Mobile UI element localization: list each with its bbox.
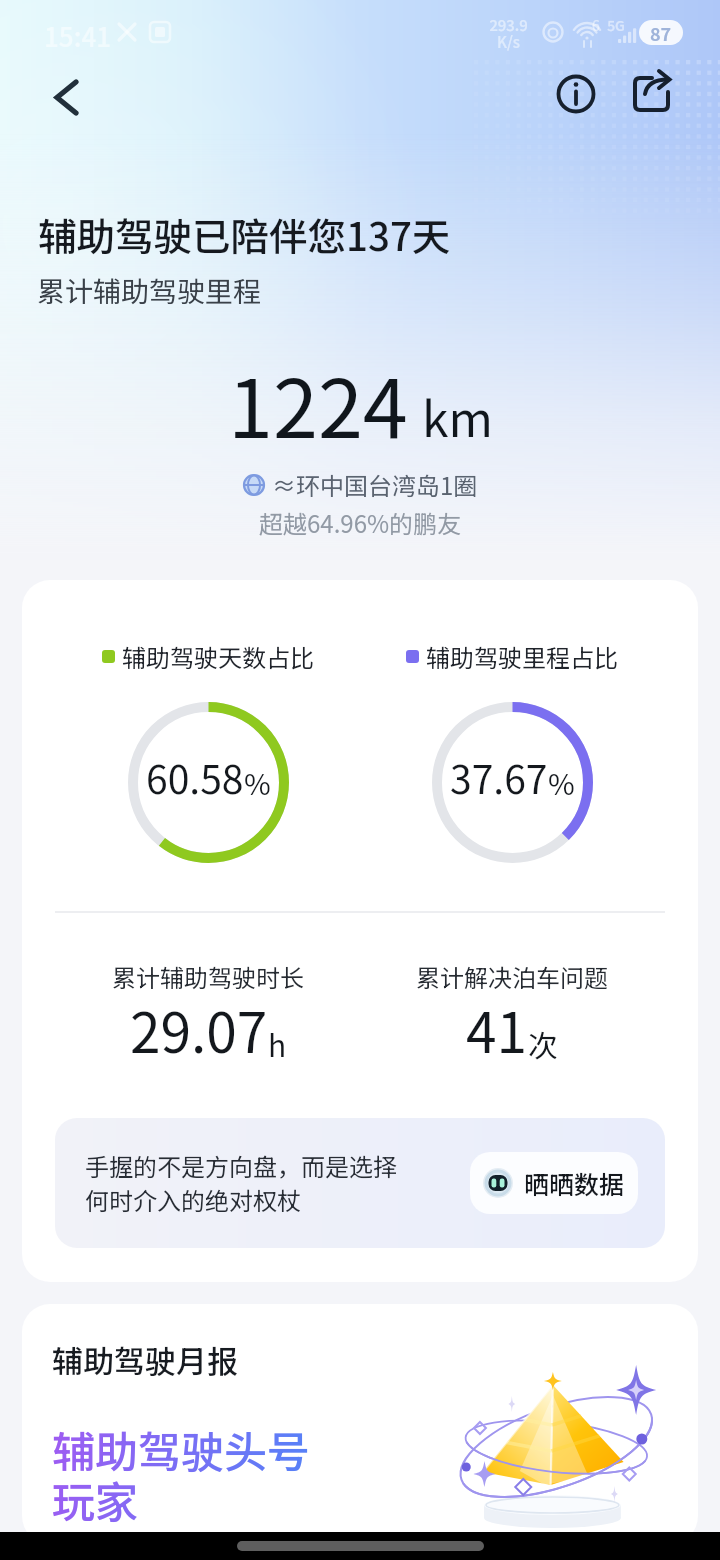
- button[interactable]: Back: [38, 69, 94, 125]
- staticText: 辅助驾驶里程占比: [426, 639, 618, 674]
- staticText: 37.67: [450, 749, 548, 805]
- staticText: 手握的不是方向盘，而是选择 何时介入的绝对权杖: [85, 1148, 397, 1217]
- button[interactable]: 晒晒数据: [470, 1152, 638, 1214]
- staticText: 6: [592, 15, 600, 35]
- staticText: 辅助驾驶头号 玩家: [52, 1418, 310, 1530]
- staticText: 5G: [607, 15, 625, 35]
- button[interactable]: Info: [550, 68, 602, 120]
- staticText: km: [422, 381, 493, 451]
- staticText: 辅助驾驶天数占比: [122, 639, 314, 674]
- staticText: 29.07: [130, 989, 268, 1069]
- staticText: %: [548, 761, 575, 803]
- staticText: ≈环中国台湾岛1圈: [272, 467, 478, 502]
- staticText: 15:41: [44, 17, 112, 55]
- staticText: 辅助驾驶月报: [52, 1337, 238, 1382]
- staticText: 累计辅助驾驶里程: [37, 270, 262, 311]
- button[interactable]: Share: [626, 68, 682, 124]
- staticText: 辅助驾驶已陪伴您137天: [38, 206, 451, 262]
- staticText: 晒晒数据: [524, 1165, 625, 1201]
- staticText: 293.9 K/s: [489, 14, 528, 52]
- staticText: h: [268, 1022, 287, 1065]
- staticText: 累计辅助驾驶时长: [112, 959, 304, 994]
- staticText: %: [244, 761, 271, 803]
- staticText: 1224: [228, 344, 408, 461]
- staticText: 超越64.96%的鹏友: [259, 505, 462, 540]
- staticText: 87: [650, 20, 672, 45]
- staticText: 次: [528, 1022, 558, 1065]
- staticText: 41: [466, 989, 528, 1069]
- staticText: 60.58: [146, 749, 244, 805]
- staticText: 累计解决泊车问题: [416, 959, 608, 994]
